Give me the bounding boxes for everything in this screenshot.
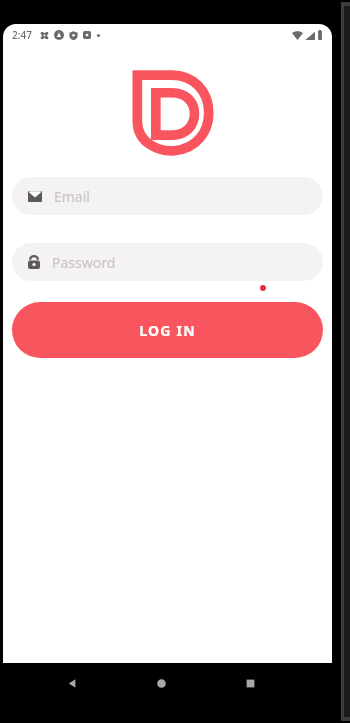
staticText: Email: [54, 187, 90, 206]
staticText: LOG IN: [139, 321, 196, 340]
button[interactable]: Email: [12, 177, 323, 215]
staticText: 2:47: [12, 28, 32, 42]
button[interactable]: Back: [55, 666, 89, 700]
button[interactable]: LOG IN: [12, 302, 323, 358]
button[interactable]: Password: [12, 243, 323, 281]
staticText: Password: [52, 253, 116, 272]
button[interactable]: Home: [144, 666, 178, 700]
button[interactable]: Recent apps: [233, 666, 267, 700]
